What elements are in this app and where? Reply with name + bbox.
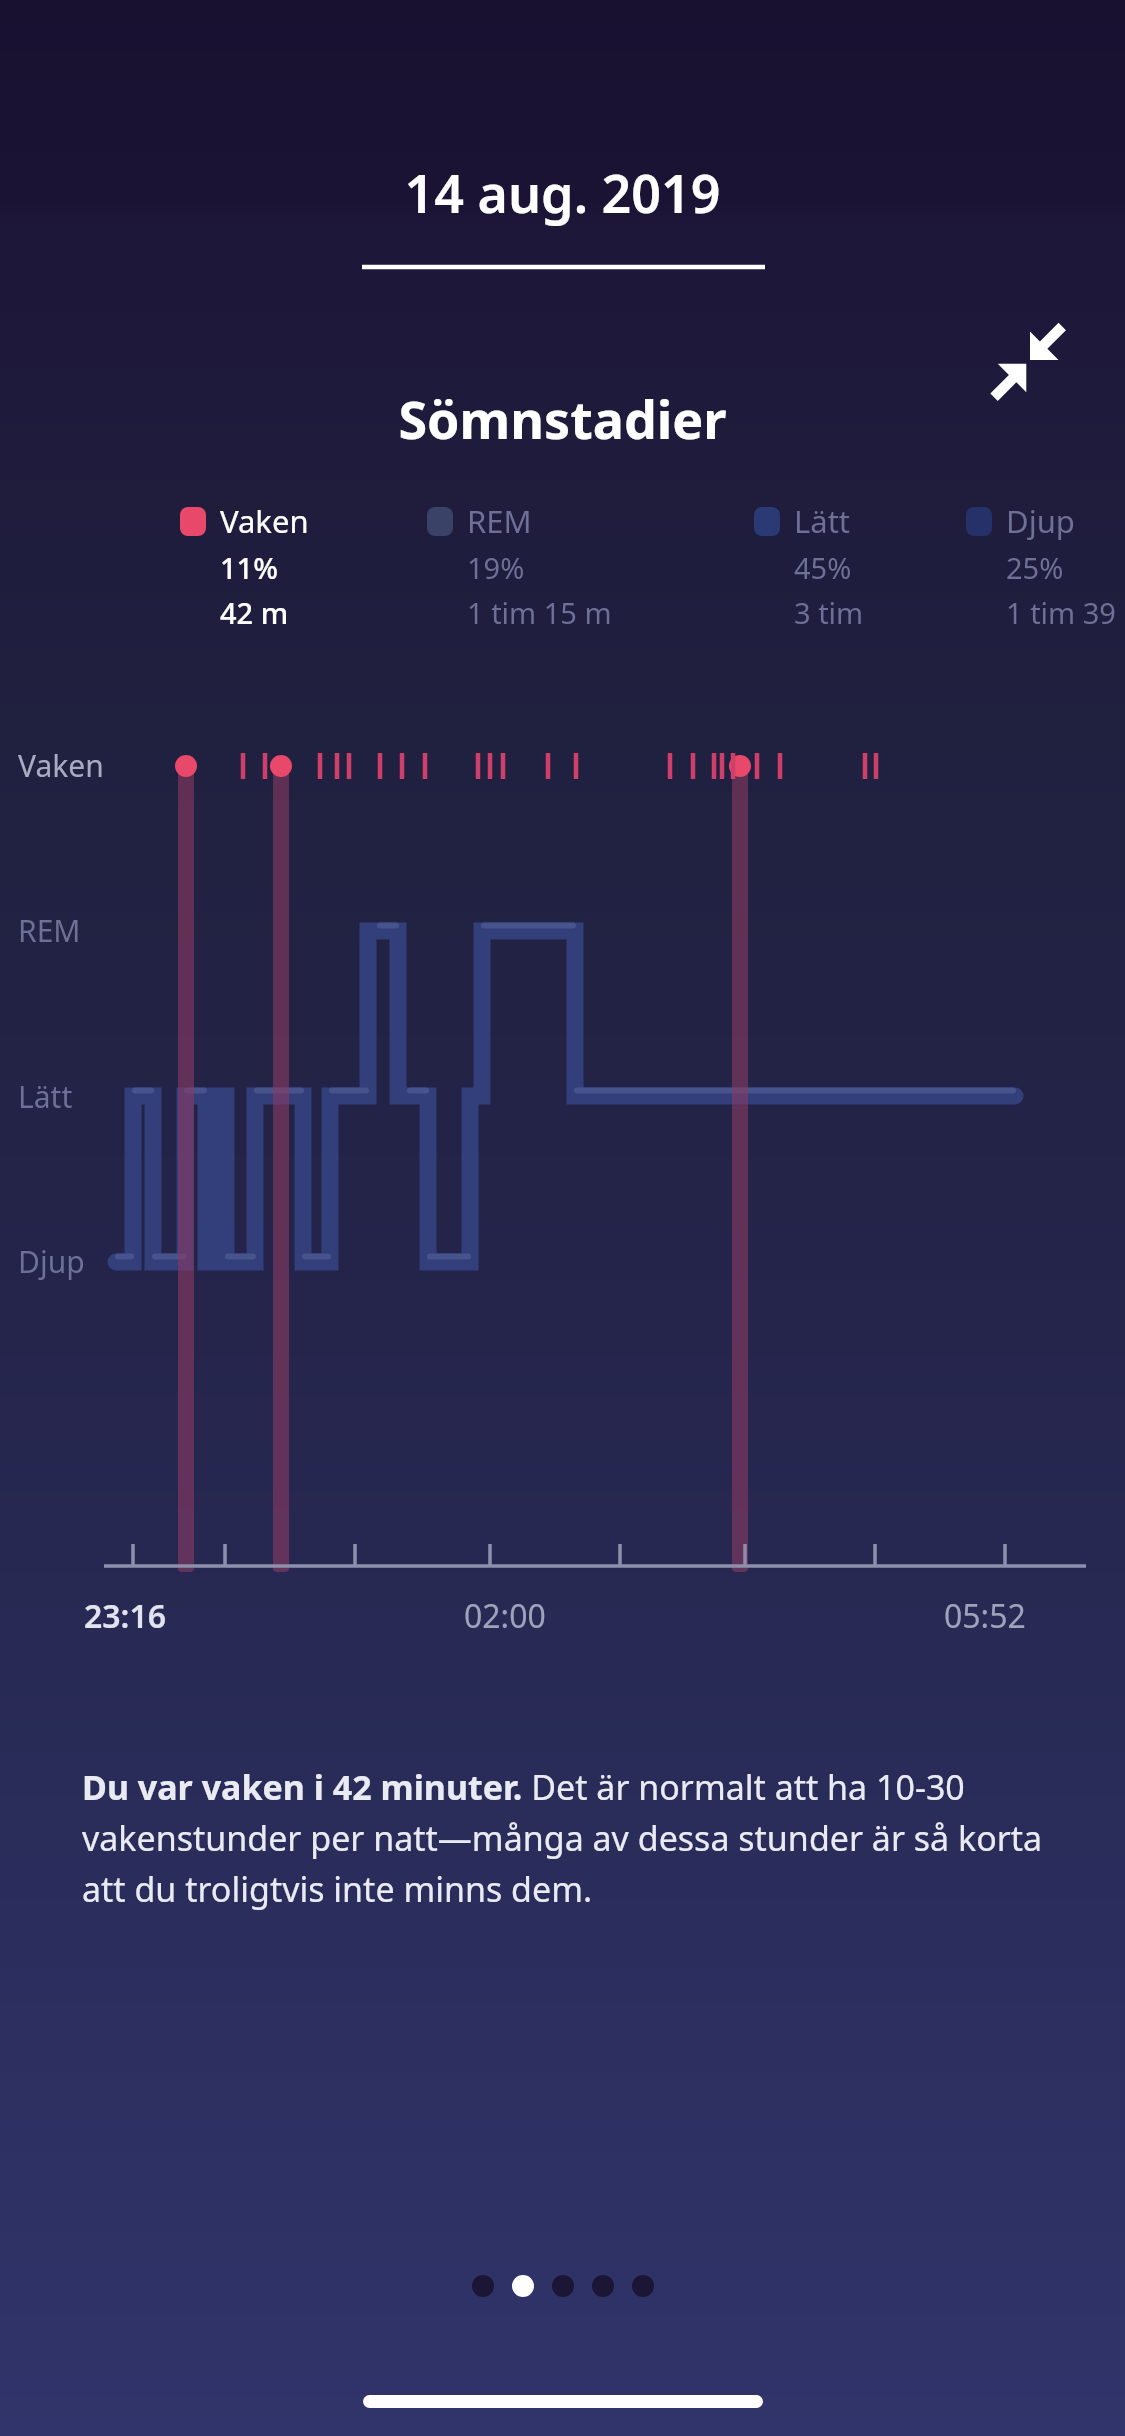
staticText: 45% bbox=[794, 548, 852, 587]
staticText: 11% bbox=[220, 548, 278, 587]
button[interactable] bbox=[472, 2275, 494, 2297]
staticText: 3 tim bbox=[794, 593, 864, 632]
button[interactable] bbox=[632, 2275, 654, 2297]
staticText: Vaken bbox=[220, 500, 309, 542]
staticText: Lätt bbox=[18, 1076, 73, 1117]
staticText: REM bbox=[467, 500, 532, 542]
staticText: 42 m bbox=[220, 593, 289, 632]
staticText: 1 tim 15 m bbox=[467, 593, 612, 632]
staticText: Lätt bbox=[794, 500, 851, 542]
staticText: Djup bbox=[18, 1241, 85, 1282]
button[interactable] bbox=[512, 2275, 534, 2297]
button[interactable]: Lätt bbox=[754, 500, 966, 632]
button[interactable] bbox=[592, 2275, 614, 2297]
staticText: 05:52 bbox=[944, 1594, 1026, 1638]
staticText: 14 aug. 2019 bbox=[0, 157, 1125, 228]
staticText: Djup bbox=[1006, 500, 1075, 542]
staticText: 25% bbox=[1006, 548, 1064, 587]
staticText: Sömnstadier bbox=[0, 383, 1125, 454]
staticText: REM bbox=[18, 910, 81, 951]
staticText: 02:00 bbox=[464, 1594, 546, 1638]
button[interactable]: REM bbox=[427, 500, 754, 632]
staticText: 23:16 bbox=[84, 1594, 167, 1638]
button[interactable]: Collapse bbox=[985, 315, 1075, 405]
button[interactable]: Djup bbox=[966, 500, 1111, 632]
staticText: 19% bbox=[467, 548, 525, 587]
staticText: 1 tim 39 m bbox=[1006, 593, 1125, 632]
staticText: Du var vaken i 42 minuter. Det är normal… bbox=[82, 1764, 1048, 1912]
button[interactable]: Vaken bbox=[180, 500, 427, 632]
button[interactable] bbox=[552, 2275, 574, 2297]
staticText: Vaken bbox=[18, 745, 104, 786]
